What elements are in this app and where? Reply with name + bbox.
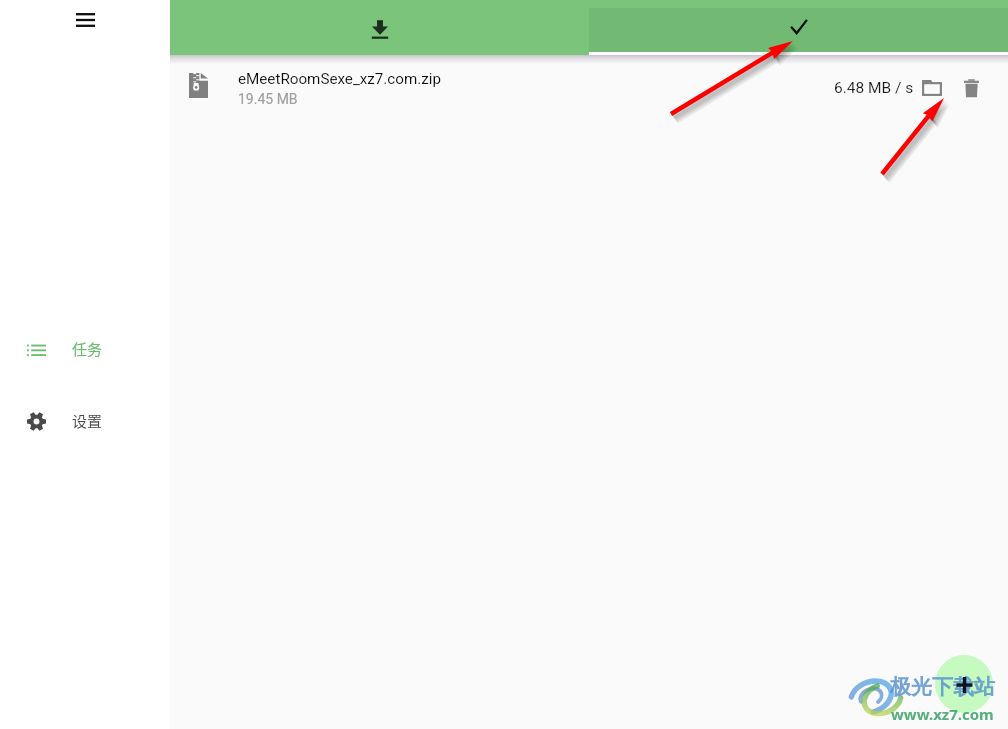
staticText: 极光下载站 (890, 674, 995, 700)
button[interactable]: eMeetRoomSexe_xz7.com.zip (170, 64, 1008, 112)
button[interactable]: Open containing folder (918, 72, 950, 104)
button[interactable]: Open navigation menu (67, 2, 103, 38)
staticText: 6.48 MB / s (834, 79, 914, 97)
button[interactable]: Completed tasks (589, 0, 1008, 55)
staticText: 设置 (72, 410, 103, 432)
staticText: www.xz7.com (891, 704, 994, 724)
button[interactable]: 设置 (0, 399, 170, 443)
button[interactable]: Delete task (955, 72, 987, 104)
staticText: eMeetRoomSexe_xz7.com.zip (238, 70, 442, 88)
button[interactable]: Downloading tasks (170, 0, 589, 55)
staticText: 19.45 MB (238, 91, 298, 107)
button[interactable]: 任务 (0, 327, 170, 371)
button[interactable]: Add new download (935, 655, 993, 713)
staticText: 任务 (72, 338, 103, 360)
